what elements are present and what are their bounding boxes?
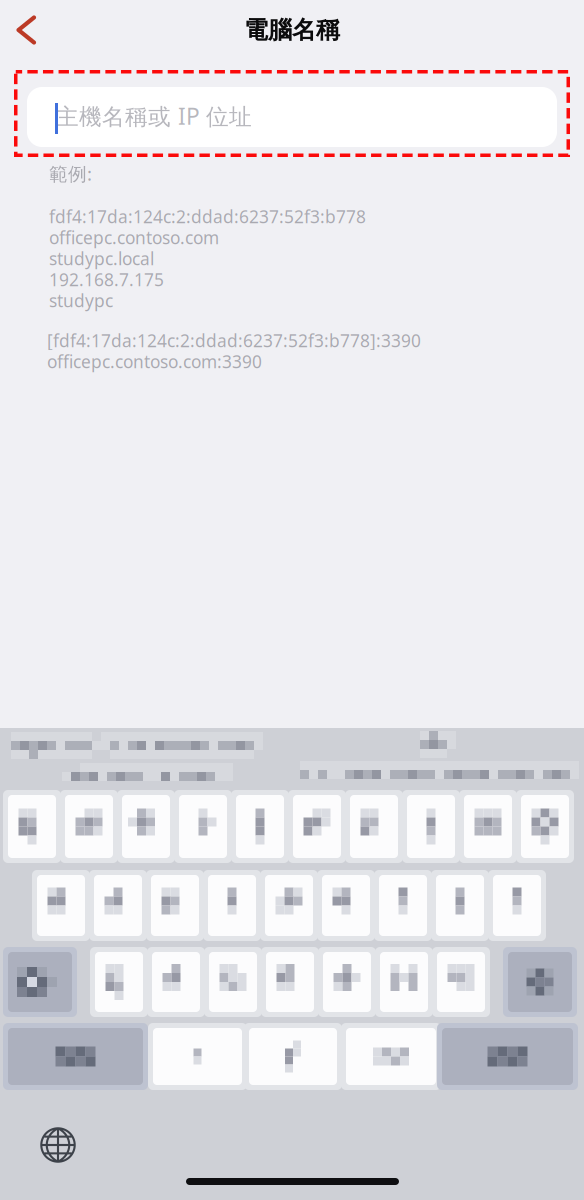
staticText: officepc.contoso.com:3390 xyxy=(47,350,262,373)
button[interactable]: Key xyxy=(379,875,427,936)
staticText: [fdf4:17da:124c:2:ddad:6237:52f3:b778]:3… xyxy=(47,329,421,352)
button[interactable]: Key xyxy=(493,875,541,936)
button[interactable]: Key xyxy=(508,952,572,1012)
button[interactable]: Key xyxy=(95,952,143,1012)
button[interactable]: Key xyxy=(152,952,200,1012)
staticText: studypc.local xyxy=(49,247,154,270)
button[interactable]: Key xyxy=(8,1028,143,1085)
button[interactable]: Key xyxy=(346,1028,436,1085)
button[interactable]: Key xyxy=(65,795,113,858)
button[interactable]: Key xyxy=(266,952,314,1012)
button[interactable]: Key xyxy=(249,1028,337,1085)
button[interactable]: Key xyxy=(407,795,455,858)
button[interactable]: 主機名稱或 IP 位址 xyxy=(27,87,557,147)
button[interactable]: Key xyxy=(322,875,370,936)
button[interactable]: Key xyxy=(179,795,227,858)
staticText: 電腦名稱 xyxy=(244,15,340,45)
button[interactable]: Back xyxy=(2,6,50,54)
button[interactable]: Key xyxy=(8,795,56,858)
button[interactable]: Key xyxy=(122,795,170,858)
button[interactable]: Key xyxy=(8,952,72,1012)
button[interactable]: Key xyxy=(464,795,512,858)
button[interactable]: Key xyxy=(37,875,85,936)
button[interactable]: Key xyxy=(293,795,341,858)
button[interactable]: Key xyxy=(151,875,199,936)
button[interactable]: Key xyxy=(323,952,371,1012)
button[interactable]: Switch keyboard xyxy=(30,1119,86,1171)
button[interactable]: Key xyxy=(209,952,257,1012)
button[interactable]: Key xyxy=(350,795,398,858)
staticText: studypc xyxy=(49,289,113,312)
button[interactable]: Key xyxy=(94,875,142,936)
staticText: fdf4:17da:124c:2:ddad:6237:52f3:b778 xyxy=(49,205,366,228)
staticText: 192.168.7.175 xyxy=(49,268,164,291)
button[interactable]: Key xyxy=(265,875,313,936)
button[interactable]: Key xyxy=(236,795,284,858)
staticText: 主機名稱或 IP 位址 xyxy=(56,101,252,131)
button[interactable]: Key xyxy=(437,952,485,1012)
button[interactable]: Key xyxy=(436,875,484,936)
button[interactable]: Key xyxy=(380,952,428,1012)
button[interactable]: Key xyxy=(153,1028,242,1085)
staticText: 範例: xyxy=(49,161,92,186)
button[interactable]: Key xyxy=(521,795,569,858)
button[interactable]: Key xyxy=(442,1028,573,1085)
button[interactable]: Key xyxy=(208,875,256,936)
staticText: officepc.contoso.com xyxy=(49,226,219,249)
